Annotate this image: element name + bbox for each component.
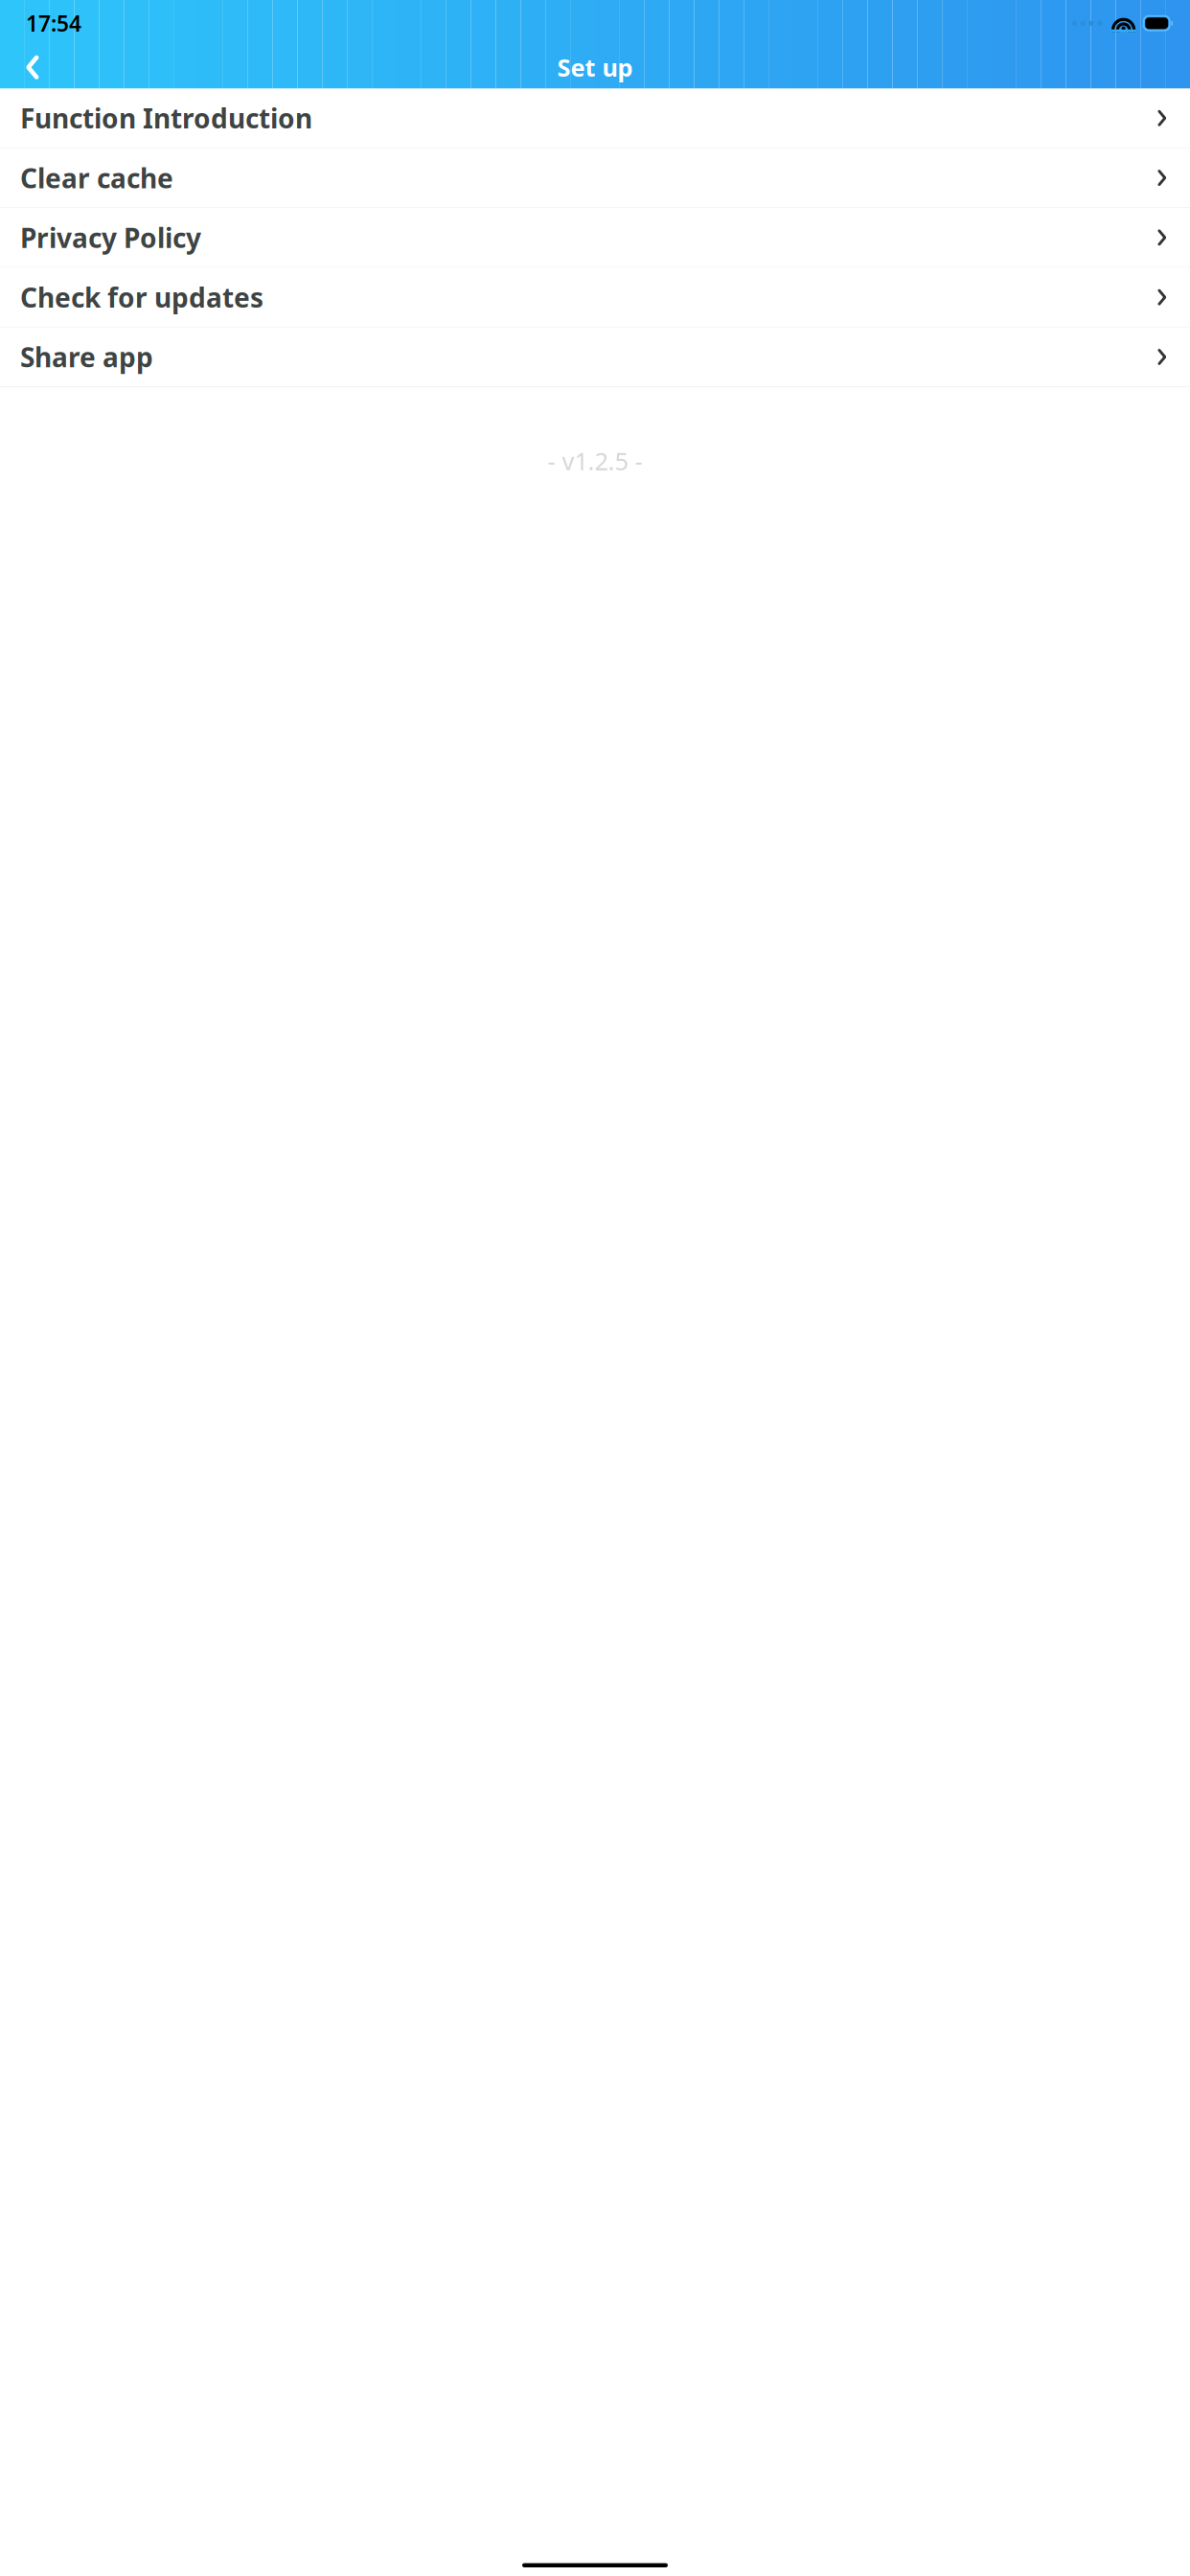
- staticText: Set up: [557, 51, 633, 83]
- staticText: Privacy Policy: [20, 220, 201, 255]
- staticText: 17:54: [26, 9, 81, 38]
- staticText: Share app: [20, 339, 153, 375]
- staticText: Check for updates: [20, 279, 263, 315]
- button[interactable]: Share app: [0, 327, 1190, 386]
- staticText: Clear cache: [20, 160, 173, 196]
- staticText: - v1.2.5 -: [548, 445, 642, 477]
- button[interactable]: Privacy Policy: [0, 208, 1190, 267]
- button[interactable]: Check for updates: [0, 268, 1190, 327]
- staticText: Function Introduction: [20, 100, 312, 136]
- button[interactable]: Back: [6, 44, 59, 90]
- button[interactable]: Clear cache: [0, 148, 1190, 207]
- button[interactable]: Function Introduction: [0, 89, 1190, 148]
